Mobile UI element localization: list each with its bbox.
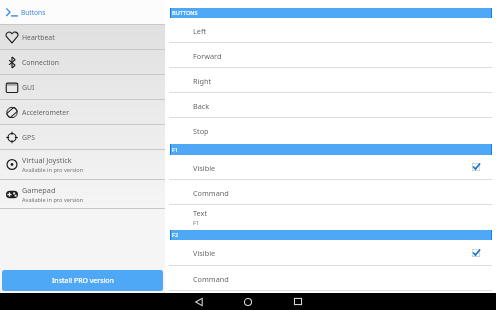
other: Toggle Visible	[472, 249, 480, 257]
other: Toggle Visible	[472, 163, 480, 171]
staticText: Connection	[22, 58, 59, 67]
button[interactable]: Forward	[165, 43, 496, 67]
button[interactable]: Back	[187, 293, 211, 310]
staticText: Command	[193, 188, 229, 198]
button[interactable]: Command	[165, 180, 496, 204]
staticText: F1	[172, 146, 179, 154]
button[interactable]: Visible	[165, 155, 496, 179]
button[interactable]: Heartbeat	[0, 25, 165, 49]
button[interactable]: Back	[165, 93, 496, 117]
staticText: Left	[193, 26, 207, 36]
button[interactable]: Stop	[165, 118, 496, 143]
staticText: F1	[193, 219, 200, 227]
staticText: Visible	[193, 248, 216, 258]
button[interactable]: Text	[165, 205, 496, 229]
staticText: GUI	[22, 83, 35, 92]
button[interactable]: Visible	[165, 240, 496, 265]
staticText: Right	[193, 76, 212, 86]
staticText: GPS	[22, 133, 35, 142]
button[interactable]: Left	[165, 18, 496, 42]
staticText: Install PRO version	[52, 276, 114, 286]
button[interactable]: GPS	[0, 125, 165, 149]
staticText: Stop	[193, 126, 209, 136]
staticText: Command	[193, 274, 229, 284]
staticText: Forward	[193, 51, 222, 61]
staticText: BUTTONS	[172, 9, 198, 17]
staticText: Available in pro version	[22, 196, 84, 204]
button[interactable]: Install PRO version	[2, 270, 163, 291]
button[interactable]: Accelerometer	[0, 100, 165, 124]
button[interactable]: Virtual Joystick	[0, 150, 165, 179]
button[interactable]: Gamepad	[0, 180, 165, 208]
button[interactable]: Recents	[286, 293, 310, 310]
staticText: Heartbeat	[22, 33, 55, 42]
button[interactable]: Home	[236, 293, 260, 310]
staticText: Text	[193, 208, 208, 218]
staticText: Accelerometer	[22, 108, 69, 117]
staticText: Back	[193, 101, 210, 111]
staticText: F2	[172, 231, 179, 239]
staticText: Visible	[193, 163, 216, 173]
staticText: Available in pro version	[22, 166, 84, 174]
button[interactable]: Connection	[0, 50, 165, 74]
staticText: Buttons	[21, 8, 46, 17]
staticText: Virtual Joystick	[22, 155, 72, 165]
staticText: Gamepad	[22, 185, 56, 195]
button[interactable]: Command	[165, 266, 496, 290]
button[interactable]: Right	[165, 68, 496, 92]
button[interactable]: GUI	[0, 75, 165, 99]
button[interactable]: Buttons	[0, 0, 165, 24]
